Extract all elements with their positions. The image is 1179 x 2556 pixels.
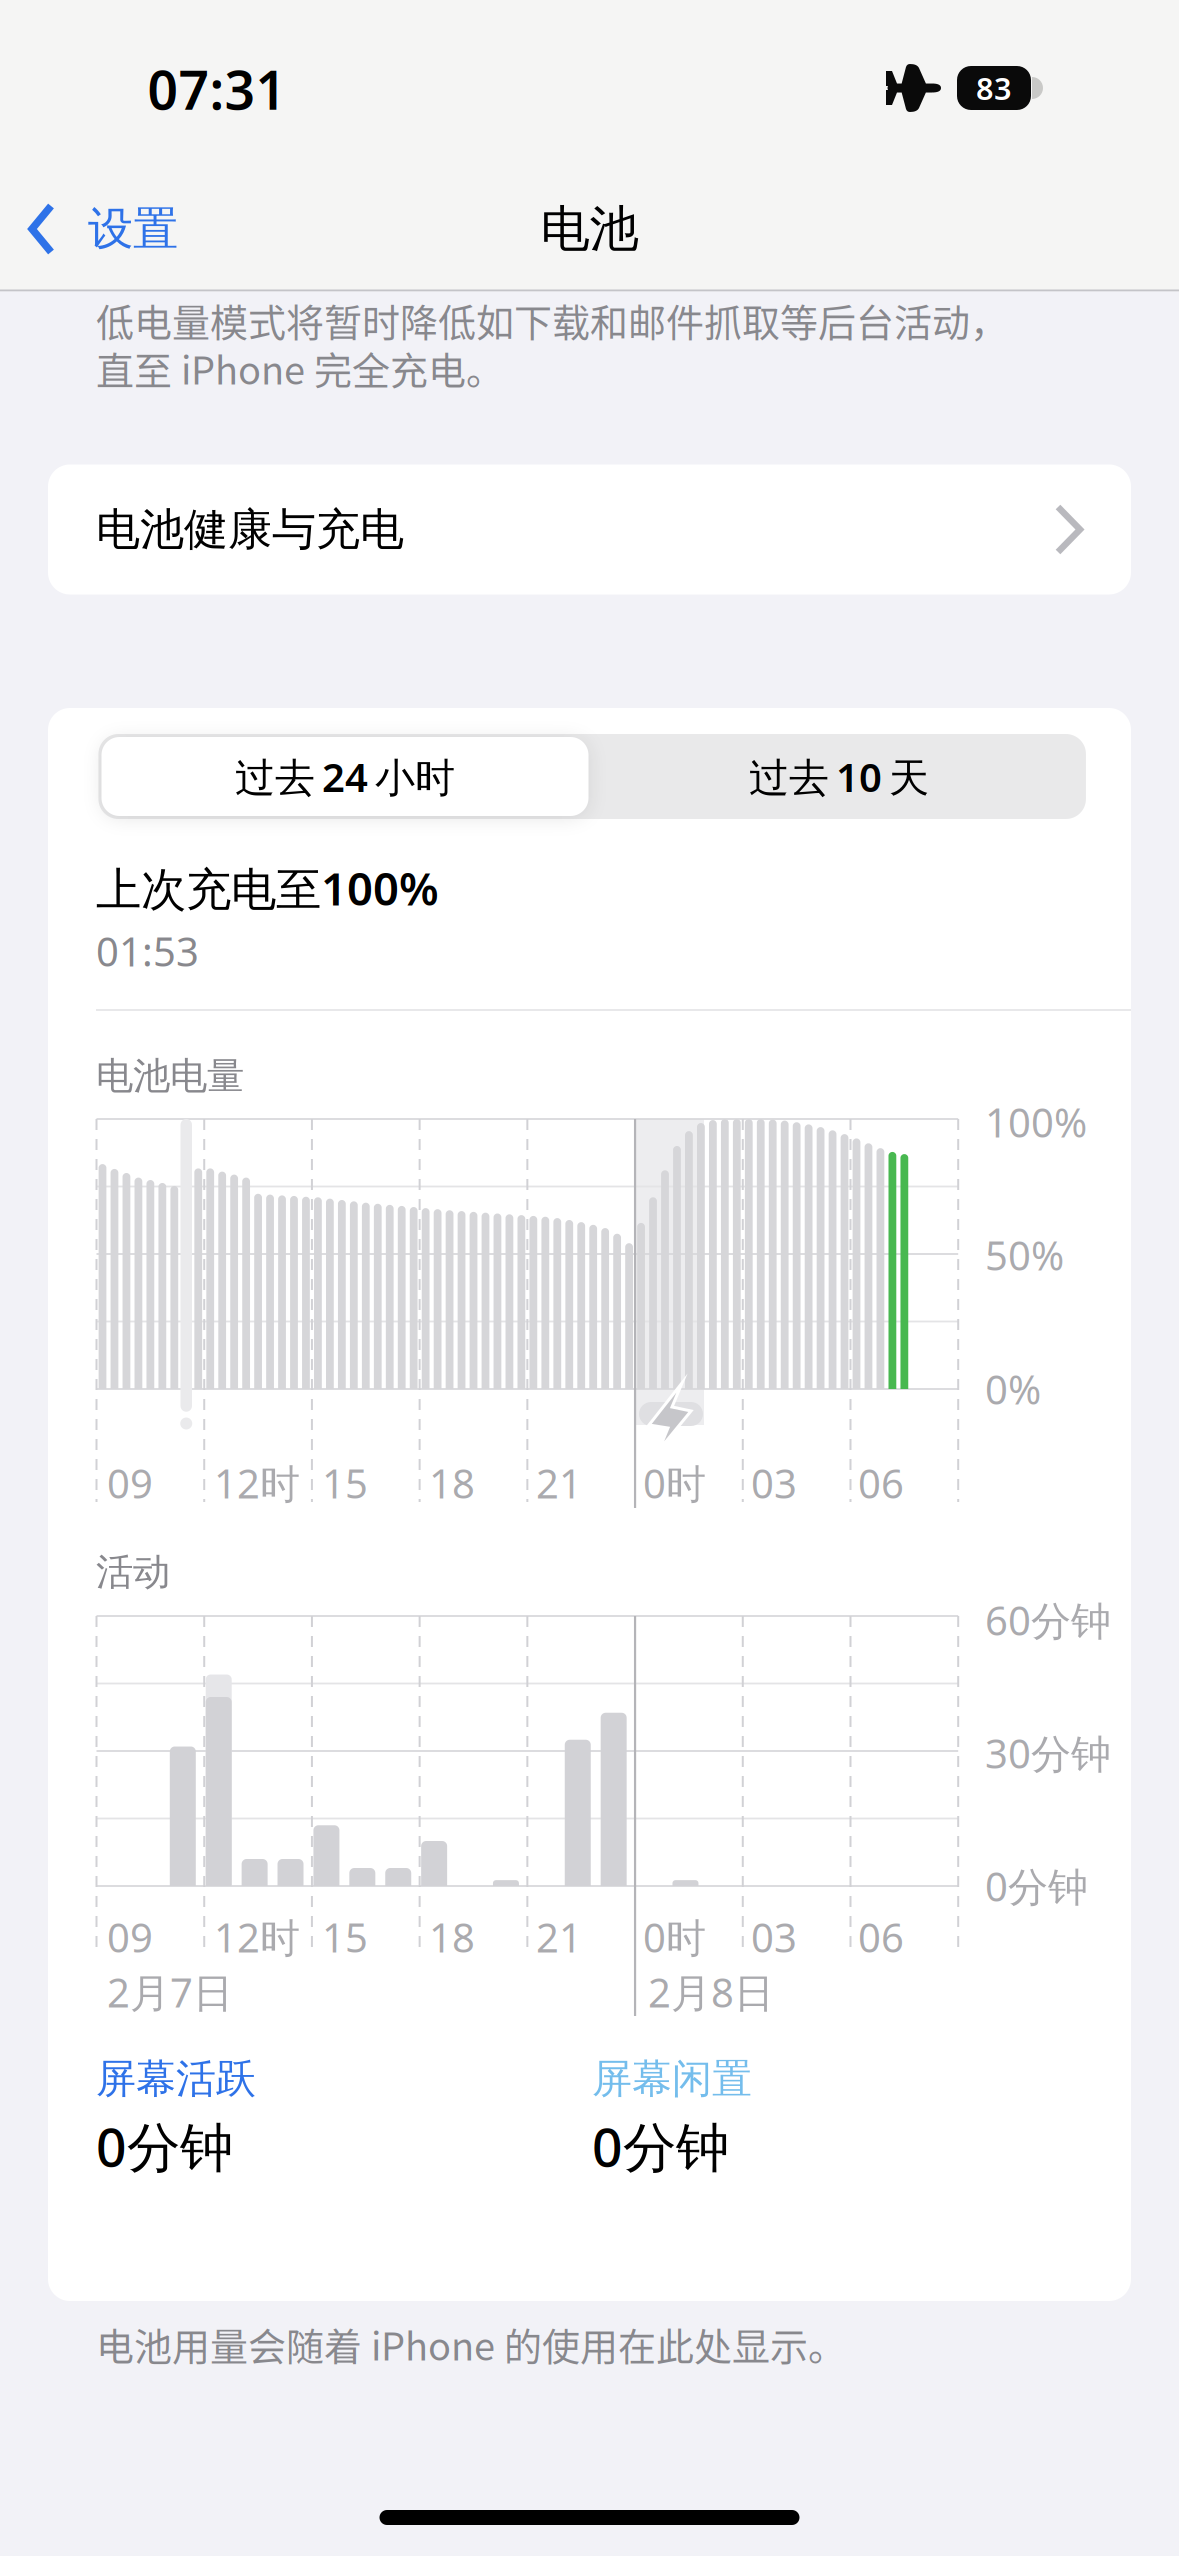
staticText: 09 <box>107 1456 153 1509</box>
staticText: 07:31 <box>147 54 286 124</box>
button[interactable]: 电池健康与充电 <box>48 464 1131 594</box>
staticText: 21 <box>536 1910 582 1963</box>
staticText: 电池电量 <box>96 1053 244 1099</box>
staticText: 低电量模式将暂时降低如下载和邮件抓取等后台活动， <box>96 292 1008 347</box>
staticText: 30分钟 <box>985 1726 1111 1779</box>
staticText: 18 <box>429 1456 475 1509</box>
staticText: 03 <box>751 1910 797 1963</box>
staticText: 设置 <box>88 201 178 257</box>
staticText: 电池 <box>540 199 638 259</box>
staticText: 50% <box>985 1228 1064 1281</box>
staticText: 2月8日 <box>648 1965 774 2018</box>
staticText: 屏幕闲置 <box>592 2054 752 2103</box>
staticText: 过去 10 天 <box>749 750 929 803</box>
staticText: 上次充电至100% <box>96 858 439 918</box>
staticText: 12时 <box>214 1910 300 1963</box>
staticText: 06 <box>858 1910 904 1963</box>
staticText: 0% <box>985 1362 1041 1415</box>
button[interactable]: 过去 24 小时 <box>101 737 588 816</box>
button[interactable]: 过去 10 天 <box>595 737 1082 816</box>
staticText: 12时 <box>214 1456 300 1509</box>
staticText: 0时 <box>643 1910 706 1963</box>
staticText: 15 <box>322 1910 368 1963</box>
staticText: 2月7日 <box>107 1965 233 2018</box>
staticText: 03 <box>751 1456 797 1509</box>
staticText: 100% <box>985 1095 1087 1148</box>
staticText: 60分钟 <box>985 1593 1111 1646</box>
staticText: 0分钟 <box>96 2111 233 2181</box>
staticText: 过去 24 小时 <box>235 750 455 803</box>
staticText: 83 <box>976 68 1012 108</box>
staticText: 0分钟 <box>985 1859 1088 1912</box>
staticText: 直至 iPhone 完全充电。 <box>96 340 504 395</box>
staticText: 09 <box>107 1910 153 1963</box>
staticText: 15 <box>322 1456 368 1509</box>
staticText: 18 <box>429 1910 475 1963</box>
staticText: 电池用量会随着 iPhone 的使用在此处显示。 <box>96 2316 846 2371</box>
staticText: 屏幕活跃 <box>96 2054 256 2103</box>
staticText: 01:53 <box>96 924 199 977</box>
button[interactable]: 设置 <box>30 189 270 269</box>
staticText: 0分钟 <box>592 2111 729 2181</box>
staticText: 电池健康与充电 <box>96 502 404 556</box>
staticText: 0时 <box>643 1456 706 1509</box>
staticText: 21 <box>536 1456 582 1509</box>
staticText: 活动 <box>96 1549 170 1595</box>
staticText: 06 <box>858 1456 904 1509</box>
